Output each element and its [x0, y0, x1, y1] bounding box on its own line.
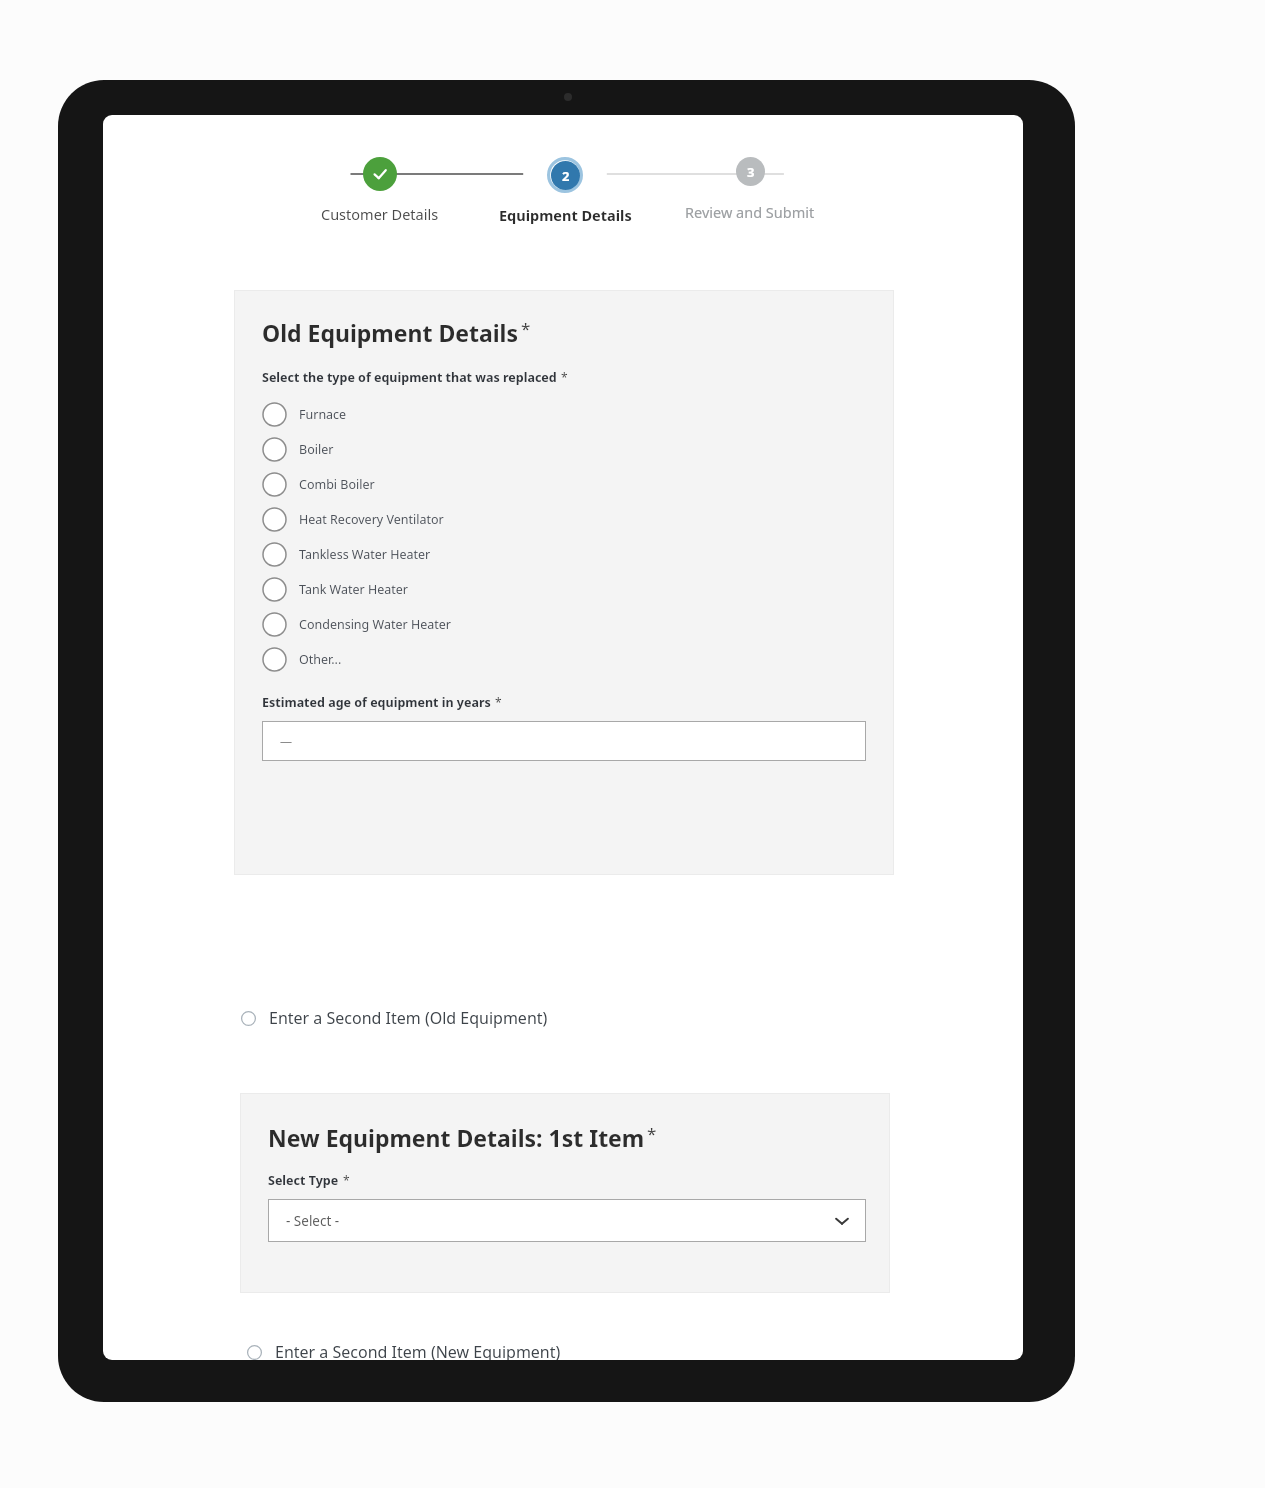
staticText: Boiler — [299, 441, 334, 458]
staticText: Enter a Second Item (Old Equipment) — [269, 1007, 548, 1029]
button[interactable]: Enter a Second Item (Old Equipment) — [241, 1001, 548, 1035]
staticText: Combi Boiler — [299, 476, 375, 493]
staticText: Heat Recovery Ventilator — [299, 511, 444, 528]
staticText: — — [280, 733, 293, 749]
button[interactable]: Heat Recovery Ventilator — [234, 502, 894, 537]
staticText: Select the type of equipment that was re… — [262, 369, 557, 386]
staticText: * — [647, 1122, 657, 1145]
staticText: * — [561, 369, 568, 385]
staticText: Tankless Water Heater — [299, 546, 431, 563]
button[interactable]: Customer Details, completed step — [290, 157, 470, 224]
staticText: Estimated age of equipment in years — [262, 694, 491, 711]
staticText: Furnace — [299, 406, 347, 423]
staticText: Old Equipment Details — [262, 317, 519, 348]
staticText: * — [521, 317, 531, 340]
button[interactable]: Review and Submit, upcoming step — [660, 157, 840, 222]
staticText: Condensing Water Heater — [299, 616, 451, 633]
staticText: * — [495, 694, 502, 710]
staticText: Other... — [299, 651, 342, 668]
staticText: 2 — [562, 167, 570, 185]
button[interactable]: Estimated age of equipment in years — [262, 721, 866, 761]
button[interactable]: Enter a Second Item (New Equipment) — [247, 1335, 561, 1360]
staticText: Review and Submit — [685, 202, 815, 222]
button[interactable]: Other... — [234, 642, 894, 677]
button[interactable]: Combi Boiler — [234, 467, 894, 502]
staticText: New Equipment Details: 1st Item — [268, 1122, 645, 1153]
button[interactable]: Tank Water Heater — [234, 572, 894, 607]
staticText: - Select - — [286, 1212, 340, 1230]
staticText: Equipment Details — [499, 205, 632, 225]
staticText: Enter a Second Item (New Equipment) — [275, 1341, 561, 1360]
button[interactable]: Select Type dropdown — [268, 1199, 866, 1242]
button[interactable]: Condensing Water Heater — [234, 607, 894, 642]
staticText: * — [343, 1172, 350, 1188]
staticText: 3 — [747, 163, 755, 181]
button[interactable]: Boiler — [234, 432, 894, 467]
button[interactable]: Tankless Water Heater — [234, 537, 894, 572]
staticText: Customer Details — [321, 204, 439, 224]
button[interactable]: Furnace — [234, 397, 894, 432]
button[interactable]: Equipment Details, current step — [475, 157, 655, 225]
staticText: Select Type — [268, 1172, 339, 1189]
staticText: Tank Water Heater — [299, 581, 409, 598]
